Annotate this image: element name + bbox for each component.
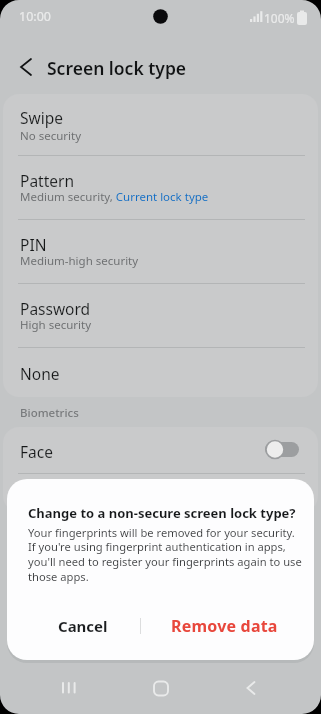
button[interactable]: Pattern xyxy=(3,155,318,219)
button[interactable] xyxy=(52,674,88,702)
staticText: Cancel xyxy=(58,616,108,636)
button[interactable]: Swipe xyxy=(3,94,318,155)
staticText: 100% xyxy=(264,10,295,26)
staticText: None xyxy=(20,363,60,384)
staticText: Biometrics xyxy=(20,405,79,421)
button[interactable]: Cancel xyxy=(32,601,140,649)
button[interactable] xyxy=(265,441,299,458)
staticText: Password xyxy=(20,298,91,319)
button[interactable] xyxy=(143,674,179,702)
button[interactable]: None xyxy=(3,347,318,397)
staticText: Medium-high security xyxy=(20,253,139,269)
staticText: Change to a non-secure screen lock type? xyxy=(28,504,296,522)
staticText: Medium security, Current lock type xyxy=(20,189,209,205)
staticText: Pattern xyxy=(20,170,74,191)
button[interactable] xyxy=(8,52,40,82)
staticText: 10:00 xyxy=(19,8,51,25)
staticText: Your fingerprints will be removed for yo… xyxy=(28,525,302,585)
staticText: Screen lock type xyxy=(47,56,187,80)
staticText: High security xyxy=(20,317,92,333)
staticText: Face xyxy=(20,441,53,462)
button[interactable]: Remove data xyxy=(152,601,287,649)
staticText: PIN xyxy=(20,234,47,255)
staticText: No security xyxy=(20,128,82,144)
staticText: Swipe xyxy=(20,107,63,128)
button[interactable]: Face xyxy=(3,427,318,474)
button[interactable] xyxy=(233,674,269,702)
button[interactable]: Password xyxy=(3,283,318,347)
button[interactable]: PIN xyxy=(3,219,318,283)
staticText: Remove data xyxy=(171,615,278,637)
